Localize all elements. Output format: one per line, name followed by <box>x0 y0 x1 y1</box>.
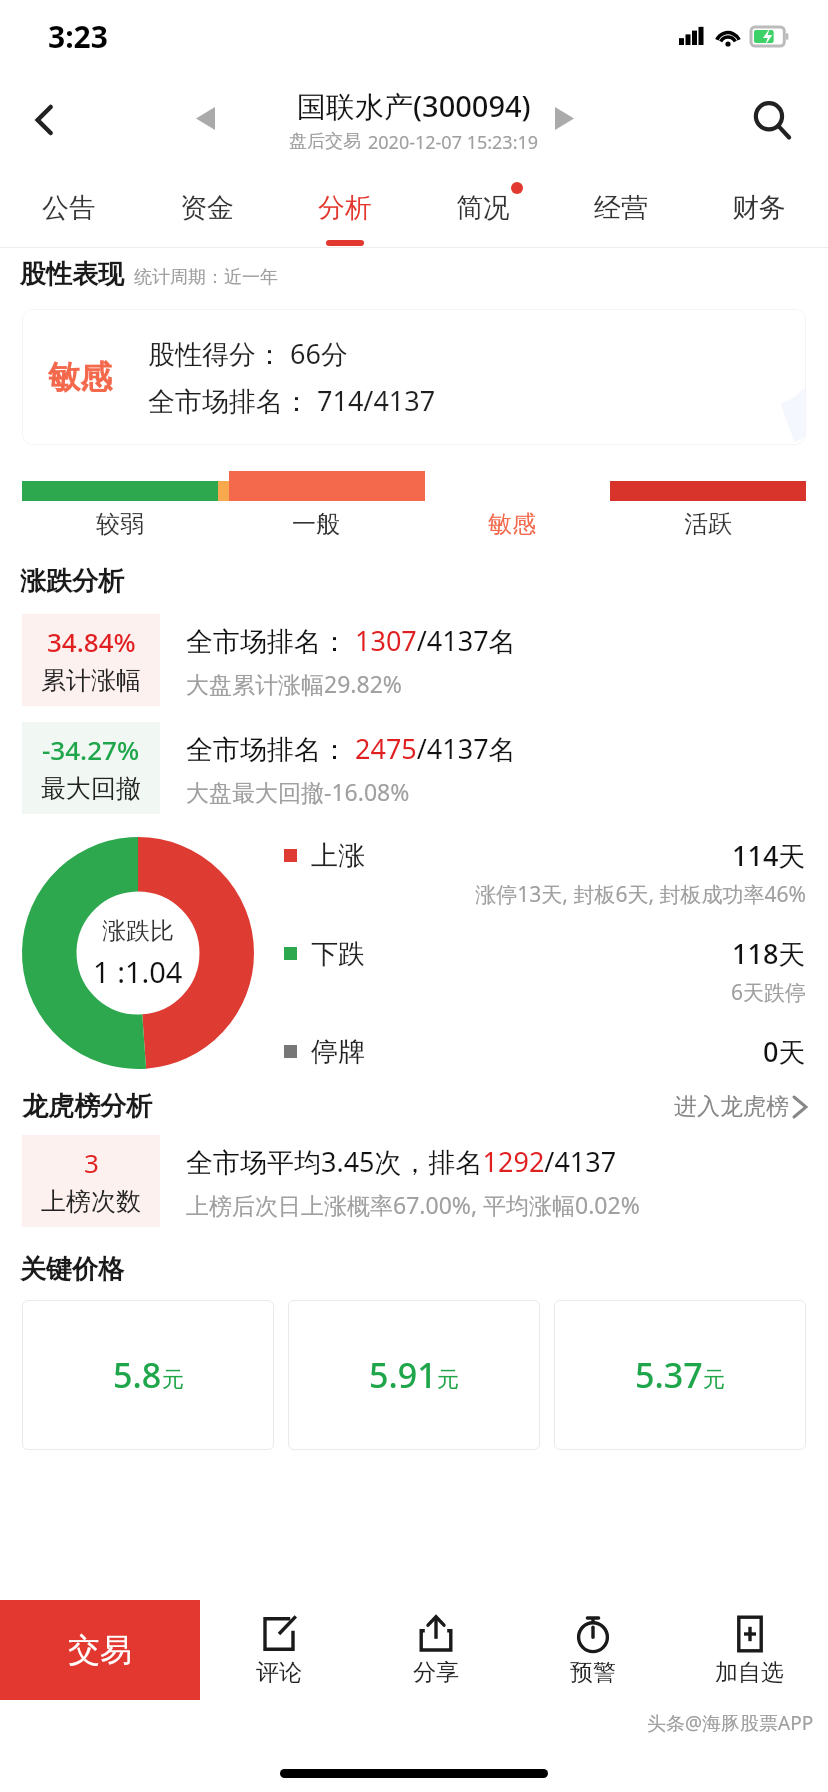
staticText: 统计周期：近一年 <box>134 266 278 289</box>
staticText: 敏感 <box>414 509 610 539</box>
staticText: 最大回撤 <box>41 773 141 804</box>
staticText: 停牌 <box>311 1035 365 1069</box>
staticText: 3 <box>84 1145 99 1180</box>
staticText: 简况 <box>456 191 510 225</box>
staticText: 预警 <box>570 1658 616 1687</box>
staticText: 股性表现 <box>20 258 124 291</box>
button[interactable]: Search <box>734 82 810 158</box>
button[interactable]: 3 <box>22 1135 806 1227</box>
button[interactable]: 评论 <box>200 1600 357 1700</box>
button[interactable]: 财务 <box>690 168 828 248</box>
staticText: 全市场排名： 1307/4137名 <box>186 622 516 659</box>
staticText: 涨停13天, 封板6天, 封板成功率46% <box>284 880 806 909</box>
staticText: 118天 <box>732 935 806 972</box>
staticText: 大盘累计涨幅29.82% <box>186 668 402 699</box>
button[interactable]: -34.27% <box>22 722 806 814</box>
staticText: 活跃 <box>610 509 806 539</box>
staticText: -34.27% <box>42 732 140 767</box>
staticText: 盘后交易 <box>289 130 361 153</box>
button[interactable]: 经营 <box>552 168 690 248</box>
staticText: 评论 <box>256 1658 302 1687</box>
staticText: 分析 <box>318 191 372 225</box>
button[interactable]: 交易 <box>0 1600 200 1700</box>
button[interactable]: 简况 <box>414 168 552 248</box>
staticText: 涨跌分析 <box>20 565 124 598</box>
staticText: 一般 <box>218 509 414 539</box>
staticText: 元 <box>162 1366 184 1394</box>
button[interactable]: 34.84% <box>22 614 806 706</box>
staticText: 6天跌停 <box>284 978 806 1007</box>
staticText: 0天 <box>763 1033 806 1070</box>
button[interactable]: 加自选 <box>671 1600 828 1700</box>
staticText: 累计涨幅 <box>41 665 141 696</box>
staticText: 全市场排名： 2475/4137名 <box>186 730 516 767</box>
staticText: 加自选 <box>715 1658 784 1687</box>
staticText: 元 <box>703 1366 725 1394</box>
staticText: 上涨 <box>311 839 365 873</box>
staticText: 财务 <box>732 191 786 225</box>
staticText: 114天 <box>732 837 806 874</box>
staticText: 上榜后次日上涨概率67.00%, 平均涨幅0.02% <box>186 1189 640 1220</box>
staticText: 3:23 <box>48 16 108 57</box>
staticText: 龙虎榜分析 <box>22 1090 152 1123</box>
staticText: 1 :1.04 <box>93 952 183 991</box>
staticText: 大盘最大回撤-16.08% <box>186 776 410 807</box>
staticText: 进入龙虎榜 <box>674 1092 789 1121</box>
staticText: 资金 <box>180 191 234 225</box>
staticText: 下跌 <box>311 937 365 971</box>
staticText: 2020-12-07 15:23:19 <box>368 130 539 155</box>
button[interactable]: 分析 <box>276 168 414 248</box>
staticText: 5.37 <box>635 1352 703 1398</box>
staticText: 上榜次数 <box>41 1186 141 1217</box>
staticText: 公告 <box>42 191 96 225</box>
button[interactable]: 预警 <box>514 1600 671 1700</box>
button[interactable]: 5.8 <box>22 1300 274 1450</box>
staticText: 国联水产(300094) <box>297 86 531 126</box>
staticText: 头条@海豚股票APP <box>647 1710 814 1736</box>
button[interactable]: 进入龙虎榜 <box>674 1092 806 1121</box>
staticText: 34.84% <box>47 624 136 659</box>
button[interactable]: 5.37 <box>554 1300 806 1450</box>
staticText: 全市场排名： 714/4137 <box>148 382 436 419</box>
button[interactable]: 资金 <box>138 168 276 248</box>
button[interactable]: 分享 <box>357 1600 514 1700</box>
staticText: 股性得分： 66分 <box>148 335 348 372</box>
button[interactable]: 公告 <box>0 168 138 248</box>
button[interactable]: 5.91 <box>288 1300 540 1450</box>
staticText: 交易 <box>68 1630 132 1670</box>
staticText: 分享 <box>413 1658 459 1687</box>
staticText: 全市场平均3.45次，排名1292/4137 <box>186 1143 617 1180</box>
staticText: 关键价格 <box>20 1253 124 1286</box>
staticText: 5.8 <box>113 1352 162 1398</box>
button[interactable]: 敏感 <box>22 309 806 445</box>
staticText: 敏感 <box>48 357 112 397</box>
staticText: 5.91 <box>369 1352 437 1398</box>
staticText: 元 <box>437 1366 459 1394</box>
staticText: 涨跌比 <box>102 916 174 946</box>
staticText: 较弱 <box>22 509 218 539</box>
staticText: 经营 <box>594 191 648 225</box>
button[interactable]: Back <box>14 88 78 152</box>
